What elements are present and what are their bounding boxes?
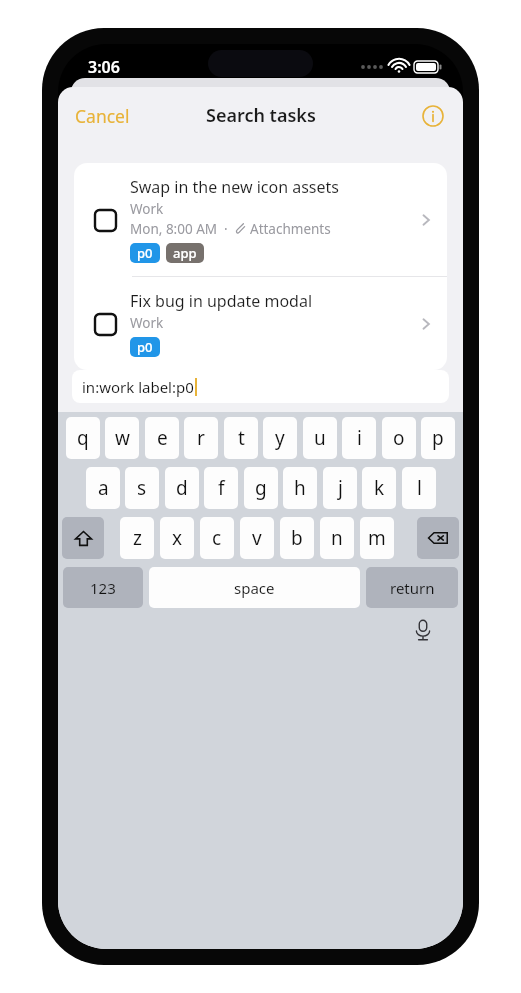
staticText: m xyxy=(368,525,386,551)
button[interactable]: o xyxy=(382,417,416,459)
staticText: 123 xyxy=(90,578,116,598)
button[interactable]: f xyxy=(204,467,238,509)
staticText: d xyxy=(176,475,188,501)
button[interactable]: t xyxy=(224,417,258,459)
button[interactable]: Complete task xyxy=(74,277,447,370)
button[interactable]: y xyxy=(263,417,297,459)
staticText: u xyxy=(314,425,326,451)
staticText: p0 xyxy=(137,244,153,262)
button[interactable]: b xyxy=(280,517,314,559)
button[interactable]: c xyxy=(200,517,234,559)
button[interactable]: r xyxy=(184,417,218,459)
button[interactable]: Cancel xyxy=(65,98,140,134)
button[interactable]: i xyxy=(342,417,376,459)
button[interactable]: g xyxy=(244,467,278,509)
button[interactable]: k xyxy=(362,467,396,509)
button[interactable]: l xyxy=(402,467,436,509)
button[interactable]: s xyxy=(125,467,159,509)
staticText: return xyxy=(390,578,435,598)
staticText: l xyxy=(417,475,422,501)
button[interactable]: Backspace xyxy=(417,517,459,559)
staticText: b xyxy=(291,525,303,551)
button[interactable]: d xyxy=(165,467,199,509)
button[interactable]: Info xyxy=(416,99,450,133)
staticText: t xyxy=(238,425,245,451)
button[interactable]: p xyxy=(421,417,455,459)
button[interactable]: q xyxy=(66,417,100,459)
staticText: e xyxy=(157,425,168,451)
staticText: w xyxy=(115,425,130,451)
staticText: f xyxy=(218,475,225,501)
staticText: h xyxy=(294,475,306,501)
staticText: Search tasks xyxy=(206,103,316,128)
staticText: app xyxy=(173,244,197,262)
button[interactable]: h xyxy=(283,467,317,509)
staticText: v xyxy=(252,525,262,551)
button[interactable]: v xyxy=(240,517,274,559)
staticText: g xyxy=(255,475,267,501)
button[interactable]: Complete task xyxy=(90,309,120,339)
button[interactable]: n xyxy=(320,517,354,559)
staticText: space xyxy=(234,578,275,598)
staticText: a xyxy=(98,475,109,501)
staticText: Cancel xyxy=(75,104,130,128)
staticText: s xyxy=(137,475,147,501)
staticText: Fix bug in update modal xyxy=(130,290,313,312)
staticText: Swap in the new icon assets xyxy=(130,176,339,198)
button[interactable]: p0 xyxy=(130,243,160,263)
staticText: c xyxy=(212,525,222,551)
button[interactable]: w xyxy=(105,417,139,459)
button[interactable]: e xyxy=(145,417,179,459)
staticText: i xyxy=(357,425,362,451)
staticText: Mon, 8:00 AM · xyxy=(130,220,235,238)
button[interactable]: space xyxy=(149,567,360,608)
staticText: 3:06 xyxy=(88,56,120,78)
staticText: p xyxy=(432,425,444,451)
staticText: z xyxy=(133,525,142,551)
button[interactable]: 123 xyxy=(63,567,143,608)
staticText: x xyxy=(172,525,183,551)
button[interactable]: Complete task xyxy=(90,205,120,235)
button[interactable]: Dictate xyxy=(407,614,439,646)
button[interactable]: u xyxy=(303,417,337,459)
staticText: q xyxy=(77,425,89,451)
staticText: p0 xyxy=(137,338,153,356)
button[interactable]: z xyxy=(120,517,154,559)
button[interactable]: Complete task xyxy=(74,163,447,276)
button[interactable]: a xyxy=(86,467,120,509)
staticText: r xyxy=(197,425,205,451)
button[interactable]: m xyxy=(360,517,394,559)
staticText: Work xyxy=(130,200,164,218)
staticText: k xyxy=(374,475,385,501)
button[interactable]: in:work label:p0 xyxy=(72,370,449,403)
staticText: Work xyxy=(130,314,164,332)
button[interactable]: shift xyxy=(62,517,104,559)
button[interactable]: x xyxy=(160,517,194,559)
button[interactable]: app xyxy=(166,243,204,263)
staticText: j xyxy=(338,475,343,501)
staticText: y xyxy=(275,425,285,451)
staticText: n xyxy=(331,525,343,551)
button[interactable]: j xyxy=(323,467,357,509)
staticText: o xyxy=(393,425,405,451)
button[interactable]: p0 xyxy=(130,337,160,357)
staticText: Attachments xyxy=(250,220,331,238)
staticText: in:work label:p0 xyxy=(82,377,194,397)
button[interactable]: return xyxy=(366,567,458,608)
